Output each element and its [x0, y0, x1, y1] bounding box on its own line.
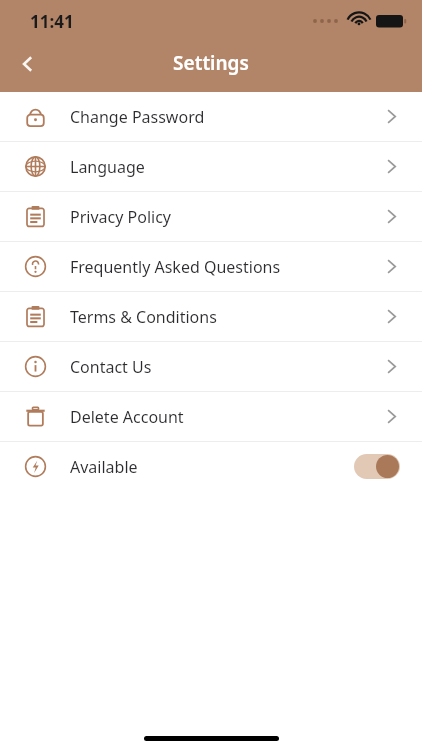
button[interactable]: Back	[6, 42, 50, 86]
staticText: Available	[70, 456, 138, 478]
staticText: Settings	[173, 50, 249, 76]
staticText: Privacy Policy	[70, 206, 171, 228]
staticText: Contact Us	[70, 356, 152, 378]
button[interactable]: Delete Account	[0, 392, 422, 441]
button[interactable]: Frequently Asked Questions	[0, 242, 422, 291]
button[interactable]: Available	[0, 442, 422, 491]
button[interactable]: Contact Us	[0, 342, 422, 391]
staticText: Frequently Asked Questions	[70, 256, 281, 278]
button[interactable]: Change Password	[0, 92, 422, 141]
staticText: Delete Account	[70, 406, 184, 428]
staticText: 11:41	[30, 10, 74, 33]
button[interactable]: Terms & Conditions	[0, 292, 422, 341]
staticText: Language	[70, 156, 145, 178]
staticText: Change Password	[70, 106, 205, 128]
button[interactable]: Language	[0, 142, 422, 191]
button[interactable]: Available toggle	[354, 454, 400, 479]
button[interactable]: Privacy Policy	[0, 192, 422, 241]
staticText: Terms & Conditions	[70, 306, 217, 328]
